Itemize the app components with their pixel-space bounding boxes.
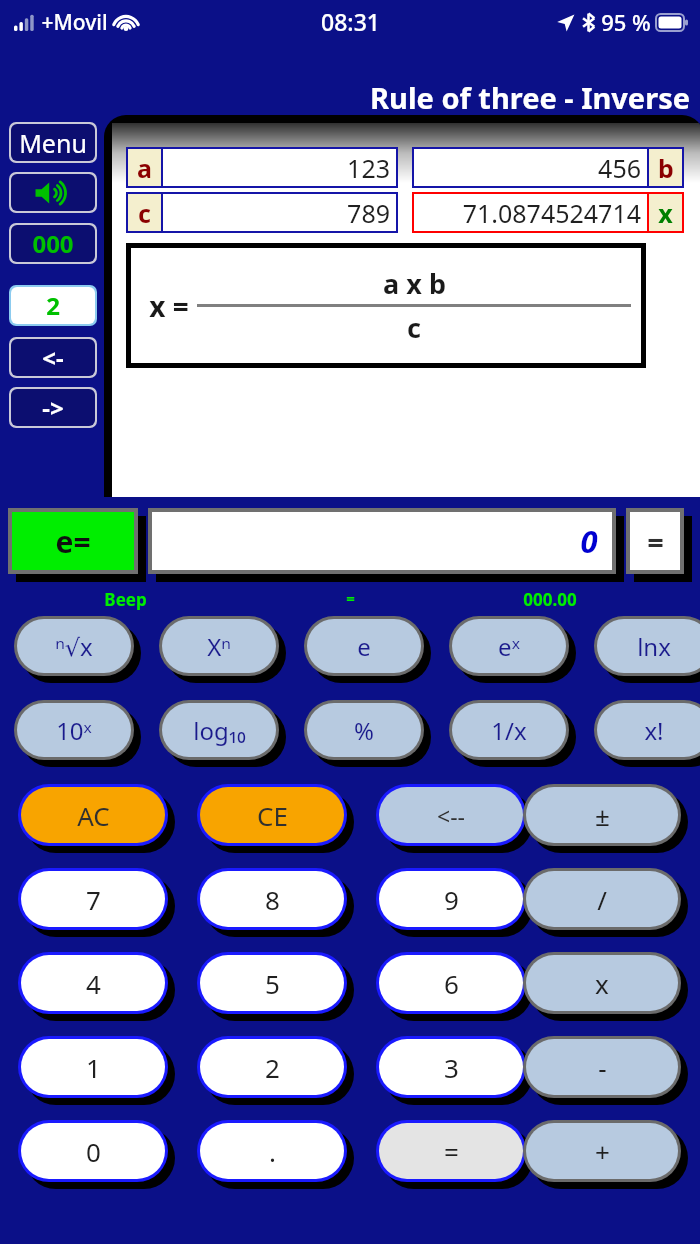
staticText: e	[357, 630, 371, 663]
staticText: x =	[149, 287, 189, 325]
staticText: +Movil	[41, 8, 108, 37]
staticText: .	[269, 1134, 276, 1169]
staticText: 6	[444, 966, 459, 1001]
staticText: Beep	[104, 588, 147, 611]
staticText: c	[138, 196, 151, 230]
staticText: 5	[265, 966, 280, 1001]
button[interactable]: 000	[11, 225, 95, 262]
staticText: Rule of three - Inverse	[0, 78, 690, 117]
button[interactable]: e=	[8, 508, 146, 582]
staticText: ->	[42, 391, 64, 424]
staticText: x	[658, 196, 673, 230]
button[interactable]: =	[379, 1123, 523, 1179]
button[interactable]: x!	[597, 703, 700, 757]
button[interactable]: 3	[379, 1039, 523, 1095]
staticText: 123	[347, 151, 390, 185]
staticText: CE	[257, 798, 288, 833]
staticText: 000.00	[523, 588, 577, 611]
staticText: ⁿ√x	[55, 630, 93, 663]
button[interactable]: AC	[21, 787, 165, 843]
staticText: Xⁿ	[207, 630, 231, 663]
staticText: <-	[42, 341, 64, 374]
button[interactable]: 1	[21, 1039, 165, 1095]
staticText: 8	[265, 882, 280, 917]
button[interactable]: <--	[379, 787, 523, 843]
button[interactable]: Menu	[11, 124, 95, 161]
button[interactable]: 5	[200, 955, 344, 1011]
button[interactable]: =	[626, 508, 692, 582]
staticText: log₁₀	[193, 714, 246, 747]
staticText: a	[137, 151, 152, 185]
staticText: 0	[580, 520, 598, 562]
button[interactable]: ⁿ√x	[17, 619, 131, 673]
staticText: 1/x	[491, 714, 527, 747]
button[interactable]: -	[526, 1039, 678, 1095]
staticText: =	[444, 1134, 459, 1169]
button[interactable]: 10ˣ	[17, 703, 131, 757]
staticText: =	[346, 588, 355, 608]
staticText: 789	[347, 196, 390, 230]
staticText: 3	[444, 1050, 459, 1085]
staticText: 9	[444, 882, 459, 917]
staticText: Menu	[19, 126, 87, 160]
button[interactable]: c	[128, 194, 396, 231]
button[interactable]: Next	[11, 389, 95, 426]
button[interactable]: e	[307, 619, 421, 673]
button[interactable]: 8	[200, 871, 344, 927]
button[interactable]: 0	[148, 508, 624, 582]
button[interactable]: x	[526, 955, 678, 1011]
button[interactable]: 9	[379, 871, 523, 927]
button[interactable]: eˣ	[452, 619, 566, 673]
button[interactable]: Sound	[11, 174, 95, 211]
staticText: 0	[86, 1134, 101, 1169]
button[interactable]: %	[307, 703, 421, 757]
staticText: e=	[55, 521, 91, 562]
staticText: +	[595, 1134, 610, 1169]
staticText: lnx	[637, 630, 671, 663]
staticText: /	[597, 882, 607, 917]
button[interactable]: /	[526, 871, 678, 927]
button[interactable]: a	[128, 149, 396, 186]
button[interactable]: x =	[131, 248, 641, 363]
staticText: b	[658, 151, 674, 185]
staticText: %	[354, 714, 374, 747]
staticText: 2	[46, 289, 60, 322]
button[interactable]: 6	[379, 955, 523, 1011]
staticText: =	[647, 522, 664, 561]
staticText: x!	[644, 714, 664, 747]
button[interactable]: lnx	[597, 619, 700, 673]
button[interactable]: +	[526, 1123, 678, 1179]
button[interactable]: 1/x	[452, 703, 566, 757]
button[interactable]: 7	[21, 871, 165, 927]
button[interactable]: 456	[414, 149, 682, 186]
staticText: 456	[598, 151, 641, 185]
staticText: eˣ	[498, 630, 520, 663]
staticText: x	[595, 966, 609, 1001]
staticText: 1	[86, 1050, 101, 1085]
staticText: 95 %	[601, 7, 651, 37]
button[interactable]: CE	[200, 787, 344, 843]
button[interactable]: 71.0874524714	[414, 194, 682, 231]
staticText: ±	[595, 798, 610, 833]
staticText: 71.0874524714	[462, 196, 641, 230]
button[interactable]: 2	[11, 287, 95, 324]
staticText: -	[598, 1050, 607, 1085]
button[interactable]: Xⁿ	[162, 619, 276, 673]
button[interactable]: 0	[21, 1123, 165, 1179]
staticText: 2	[265, 1050, 280, 1085]
button[interactable]: log₁₀	[162, 703, 276, 757]
staticText: <--	[437, 800, 465, 831]
staticText: 08:31	[321, 6, 380, 37]
button[interactable]: .	[200, 1123, 344, 1179]
staticText: a x b	[383, 265, 446, 302]
staticText: AC	[77, 798, 110, 833]
button[interactable]: Previous	[11, 339, 95, 376]
staticText: 10ˣ	[56, 714, 92, 747]
button[interactable]: 2	[200, 1039, 344, 1095]
staticText: 4	[86, 966, 101, 1001]
staticText: 000	[32, 227, 74, 260]
button[interactable]: 4	[21, 955, 165, 1011]
staticText: c	[407, 309, 421, 346]
button[interactable]: ±	[526, 787, 678, 843]
staticText: 7	[86, 882, 101, 917]
